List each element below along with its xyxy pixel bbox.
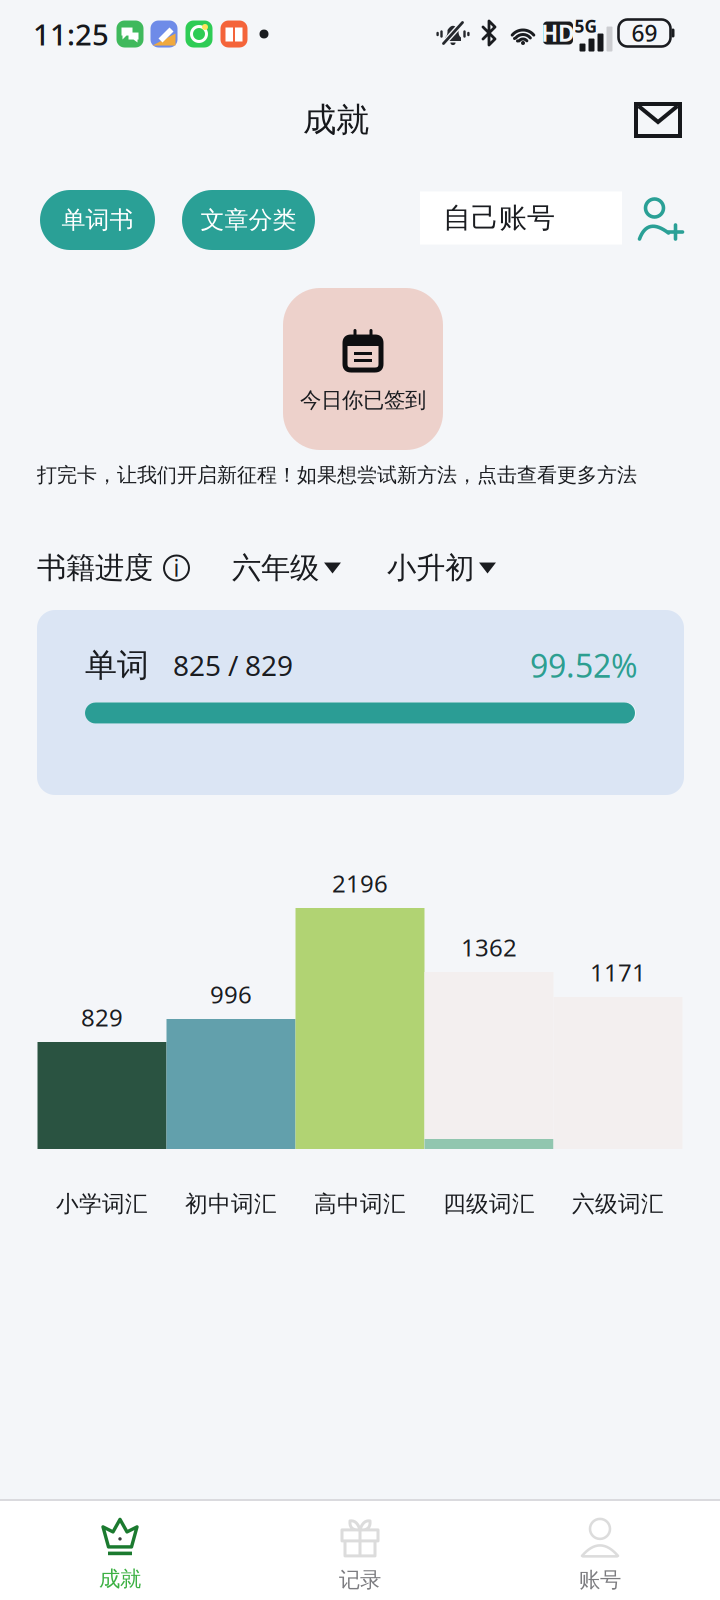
staticText: 成就 (99, 1566, 141, 1592)
staticText: 打完卡，让我们开启新征程！如果想尝试新方法，点击查看更多方法 (37, 463, 637, 487)
staticText: 5G (574, 14, 597, 37)
staticText: 六年级 (232, 550, 319, 586)
staticText: 成就 (303, 99, 369, 140)
staticText: 825 / 829 (173, 647, 293, 684)
staticText: 996 (210, 978, 252, 1010)
staticText: 今日你已签到 (300, 387, 426, 413)
staticText: 书籍进度 (37, 550, 153, 586)
staticText: 69 (631, 18, 657, 48)
button[interactable]: Add account (630, 191, 690, 249)
staticText: 初中词汇 (185, 1190, 277, 1218)
staticText: 99.52% (530, 644, 638, 686)
staticText: HD (541, 18, 575, 48)
staticText: 小学词汇 (56, 1190, 148, 1218)
button[interactable]: Messages (620, 84, 696, 156)
staticText: 1171 (590, 956, 646, 988)
staticText: 文章分类 (200, 205, 296, 235)
staticText: 高中词汇 (314, 1190, 406, 1218)
staticText: 小升初 (387, 550, 474, 586)
button[interactable]: 单词书 (40, 190, 155, 250)
staticText: 自己账号 (443, 201, 555, 235)
button[interactable]: 小升初 (387, 550, 496, 586)
button[interactable]: 今日你已签到 (283, 288, 443, 450)
button[interactable]: 六年级 (232, 550, 341, 586)
staticText: 11:25 (33, 14, 109, 53)
staticText: 四级词汇 (443, 1190, 535, 1218)
staticText: 1362 (461, 931, 517, 963)
staticText: i (173, 553, 179, 583)
staticText: 单词书 (61, 205, 133, 235)
staticText: 829 (81, 1001, 123, 1033)
button[interactable]: 成就 (0, 1501, 240, 1600)
staticText: 六级词汇 (572, 1190, 664, 1218)
button[interactable]: 自己账号 (420, 191, 622, 244)
button[interactable]: 账号 (480, 1501, 720, 1600)
staticText: 单词 (85, 646, 149, 685)
staticText: 记录 (339, 1567, 381, 1593)
staticText: 账号 (579, 1567, 621, 1593)
staticText: 2196 (332, 867, 388, 899)
button[interactable]: 记录 (240, 1501, 480, 1600)
button[interactable]: 文章分类 (182, 190, 315, 250)
